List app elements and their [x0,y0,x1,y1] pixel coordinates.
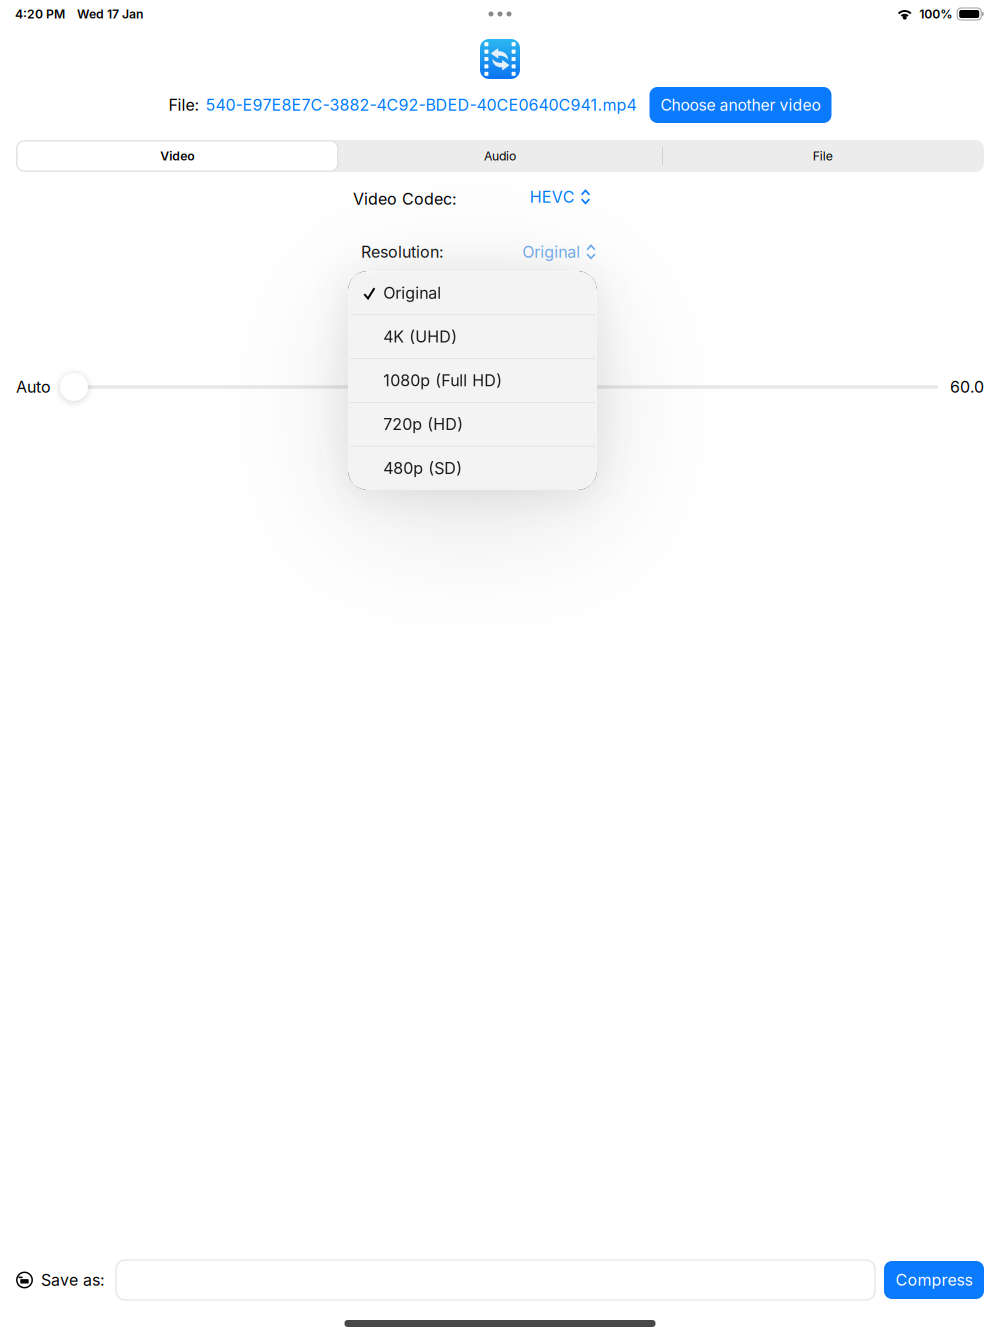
staticText: Compress [895,1270,972,1290]
staticText: File [813,149,833,163]
staticText: 720p (HD) [383,415,463,434]
button[interactable]: Video [16,140,339,172]
button[interactable]: 720p (HD) [350,403,595,446]
staticText: Save as: [41,1270,105,1290]
button[interactable]: 4K (UHD) [350,315,595,358]
staticText: Video [160,149,194,163]
staticText: 1080p (Full HD) [383,371,502,390]
staticText: 4K (UHD) [383,327,457,346]
staticText: 540-E97E8E7C-3882-4C92-BDED-40CE0640C941… [205,95,636,115]
button[interactable]: HEVC [525,185,595,209]
staticText: HEVC [530,187,575,207]
button[interactable]: File [661,140,984,172]
button[interactable]: Compress [884,1261,984,1299]
staticText: Audio [484,149,516,163]
button[interactable]: Audio [339,140,661,172]
staticText: Choose another video [660,95,820,114]
button[interactable]: Save as file name [116,1260,875,1300]
button[interactable]: 480p (SD) [350,447,595,490]
button[interactable]: 1080p (Full HD) [350,359,595,402]
staticText: Video [160,149,194,163]
staticText: Original [383,283,441,303]
button[interactable]: Original [350,271,595,314]
staticText: 4:20 PM [15,7,65,21]
staticText: Resolution: [361,242,444,262]
staticText: Auto [16,377,51,397]
staticText: 480p (SD) [383,458,462,478]
staticText: Wed 17 Jan [77,7,143,21]
staticText: 100% [919,7,952,21]
button[interactable]: Original [521,240,597,264]
staticText: Video Codec: [353,189,457,209]
staticText: File: [168,95,199,115]
button[interactable]: Choose another video [649,87,831,123]
staticText: 60.0 [950,377,984,397]
staticText: Original [522,242,580,262]
